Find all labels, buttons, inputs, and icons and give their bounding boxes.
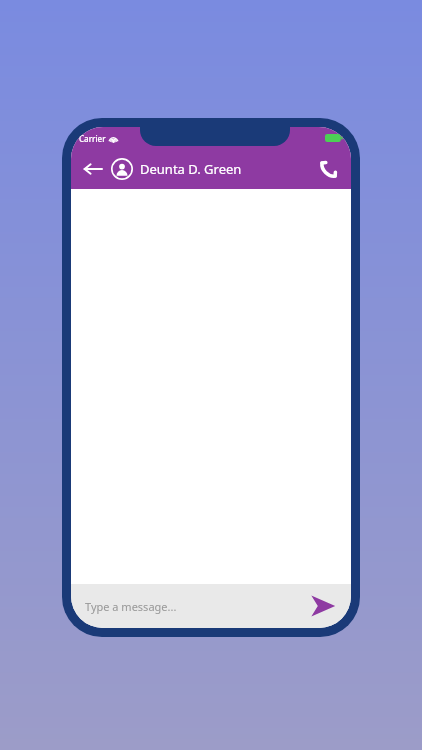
staticText: Deunta D. Green	[140, 160, 242, 178]
button[interactable]: Back	[77, 153, 109, 185]
button[interactable]: Type a message...	[85, 584, 305, 628]
button[interactable]: Send	[305, 588, 341, 624]
button[interactable]: Call	[313, 153, 345, 185]
staticText: Type a message...	[85, 599, 177, 614]
staticText: Carrier	[79, 133, 106, 144]
